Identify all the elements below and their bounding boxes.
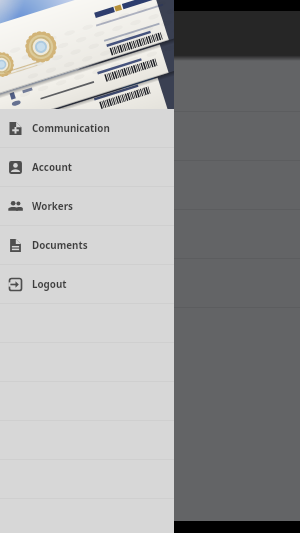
other: Logout (8, 277, 23, 292)
staticText: Documents (32, 239, 88, 252)
staticText: Logout (32, 278, 67, 291)
button[interactable]: Documents (0, 226, 174, 264)
other: Account (8, 160, 23, 175)
other: Communication (8, 121, 23, 136)
button[interactable]: Communication (0, 109, 174, 147)
staticText: Communication (32, 122, 110, 135)
staticText: Account (32, 161, 73, 174)
other: Documents (8, 238, 23, 253)
button[interactable]: Workers (0, 187, 174, 225)
button[interactable]: Logout (0, 265, 174, 303)
other: Workers (8, 199, 23, 214)
button[interactable]: Account (0, 148, 174, 186)
staticText: Workers (32, 200, 73, 213)
